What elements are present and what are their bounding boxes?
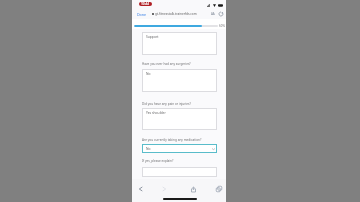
staticText: No (146, 71, 151, 75)
button[interactable]: Text size (209, 9, 216, 19)
button[interactable]: Forward (159, 184, 169, 194)
button[interactable]: Back (135, 184, 145, 194)
staticText: 60% (219, 24, 225, 28)
staticText: Support (146, 34, 159, 38)
staticText: AA (211, 12, 215, 16)
staticText: Are you currently taking any medication? (142, 138, 202, 142)
button[interactable]: No (142, 144, 217, 153)
button[interactable]: Tabs (214, 184, 224, 194)
staticText: Did you have any pain or injuries? (142, 102, 191, 106)
staticText: Have you ever had any surgeries? (142, 62, 191, 66)
button[interactable]: Done (135, 9, 148, 19)
button[interactable]: Support (142, 32, 217, 55)
staticText: No (146, 146, 151, 150)
staticText: Yes shoulder (146, 110, 166, 114)
button[interactable]: Reload (217, 9, 224, 19)
button[interactable]: No (142, 69, 217, 92)
staticText: gt-fitnesstalk.trainerfds.com (155, 12, 197, 16)
staticText: If yes, please explain? (142, 159, 174, 163)
staticText: Done (137, 12, 147, 17)
button[interactable]: Share (188, 184, 198, 194)
button[interactable]: Yes shoulder (142, 108, 217, 130)
button[interactable] (142, 167, 217, 177)
button[interactable]: gt-fitnesstalk.trainerfds.com (152, 9, 197, 19)
staticText: 10:44 (141, 2, 150, 6)
